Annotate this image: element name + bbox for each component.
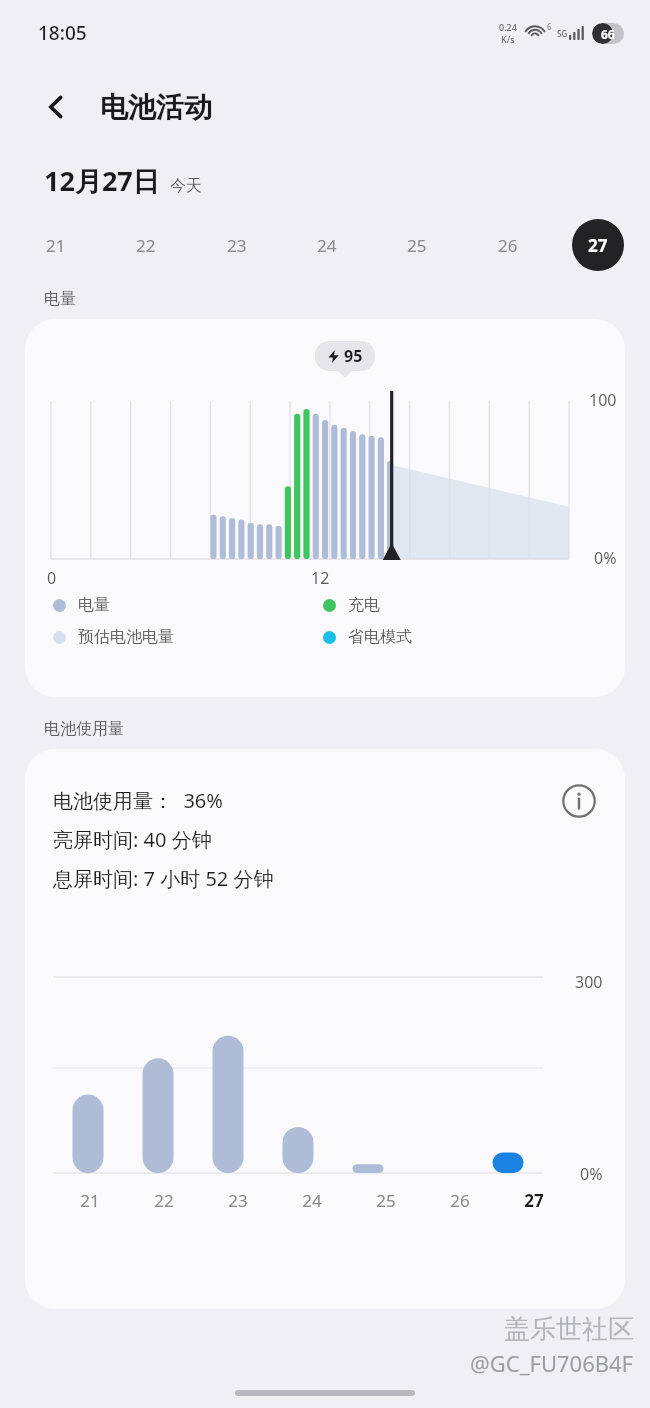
staticText: 电池活动 [100, 90, 212, 125]
button[interactable]: 23 [211, 219, 263, 271]
staticText: 23 [227, 234, 247, 257]
staticText: 预估电池电量 [78, 627, 174, 647]
button[interactable]: 24 [301, 219, 353, 271]
staticText: 300 [575, 971, 603, 993]
staticText: @GC_FU706B4F [470, 1348, 634, 1378]
staticText: 0% [594, 547, 617, 569]
staticText: 盖乐世社区 [504, 1313, 634, 1346]
button[interactable]: 22 [120, 219, 172, 271]
staticText: 12月27日 [44, 162, 160, 199]
button[interactable]: 26 [482, 219, 534, 271]
staticText: 电量 [44, 289, 76, 309]
staticText: 23 [228, 1189, 248, 1212]
staticText: 5G [557, 28, 568, 39]
staticText: 0.24 [499, 21, 517, 33]
staticText: 24 [302, 1189, 322, 1212]
staticText: 24 [317, 234, 337, 257]
staticText: 27 [524, 1189, 544, 1212]
staticText: 21 [46, 234, 66, 257]
staticText: 息屏时间: 7 小时 52 分钟 [53, 865, 274, 892]
button[interactable]: 27 [572, 219, 624, 271]
staticText: 0% [580, 1163, 603, 1185]
staticText: 6 [547, 21, 552, 32]
button[interactable]: 21 [30, 219, 82, 271]
staticText: 18:05 [38, 20, 87, 46]
button[interactable]: 返回 [30, 81, 82, 133]
staticText: 12 [311, 567, 330, 589]
staticText: 省电模式 [348, 627, 412, 647]
staticText: 27 [588, 234, 608, 257]
button[interactable]: 电池使用量： 36% [25, 749, 625, 1309]
button[interactable]: 信息 [557, 779, 601, 823]
button[interactable]: 25 [391, 219, 443, 271]
staticText: 66 [601, 26, 615, 42]
staticText: 25 [376, 1189, 396, 1212]
staticText: 95 [344, 345, 363, 367]
staticText: 100 [589, 389, 617, 411]
staticText: 26 [450, 1189, 470, 1212]
button[interactable]: 100 [25, 319, 625, 697]
staticText: 亮屏时间: 40 分钟 [53, 826, 212, 853]
staticText: 0 [47, 567, 57, 589]
staticText: 电池使用量： 36% [53, 787, 223, 814]
staticText: K/s [501, 33, 515, 45]
staticText: 25 [407, 234, 427, 257]
staticText: 22 [136, 234, 156, 257]
staticText: 电池使用量 [44, 719, 124, 739]
staticText: 26 [498, 234, 518, 257]
staticText: 21 [80, 1189, 100, 1212]
staticText: 充电 [348, 595, 380, 615]
staticText: 22 [154, 1189, 174, 1212]
staticText: 电量 [78, 595, 110, 615]
staticText: 今天 [170, 176, 202, 196]
